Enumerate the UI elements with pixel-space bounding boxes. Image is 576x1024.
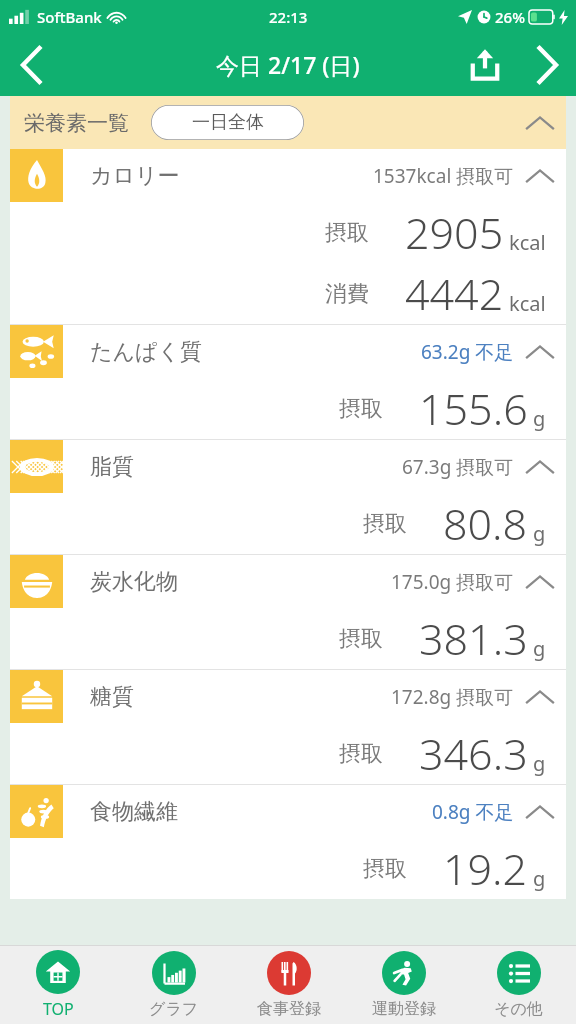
staticText: その他 — [494, 999, 543, 1019]
staticText: たんぱく質 — [90, 338, 203, 366]
staticText: 26% — [495, 7, 525, 27]
button[interactable]: Collapse カロリー — [514, 149, 566, 202]
button[interactable]: 脂質 — [10, 440, 566, 493]
staticText: TOP — [43, 998, 74, 1020]
staticText: 381.3 — [419, 609, 528, 668]
button[interactable]: グラフ — [116, 946, 231, 1024]
button[interactable]: 炭水化物 — [10, 555, 566, 608]
staticText: 63.2g 不足 — [421, 339, 514, 365]
button[interactable]: Collapse 脂質 — [514, 440, 566, 493]
staticText: kcal — [509, 290, 546, 317]
button[interactable]: Share — [452, 34, 518, 96]
button[interactable]: 食事登録 — [231, 946, 346, 1024]
button[interactable]: Collapse 食物繊維 — [514, 785, 566, 838]
staticText: 消費 — [325, 280, 369, 308]
button[interactable]: 栄養素一覧 — [10, 96, 566, 149]
button[interactable]: Collapse 炭水化物 — [514, 555, 566, 608]
button[interactable]: たんぱく質 — [10, 325, 566, 378]
button[interactable]: Previous day — [0, 34, 62, 96]
staticText: 1537kcal 摂取可 — [373, 163, 514, 189]
staticText: 脂質 — [90, 453, 134, 481]
staticText: グラフ — [149, 999, 199, 1019]
button[interactable]: その他 — [461, 946, 576, 1024]
staticText: 摂取 — [339, 740, 383, 768]
staticText: g — [533, 405, 546, 432]
staticText: g — [533, 520, 546, 547]
staticText: 運動登録 — [372, 999, 436, 1019]
staticText: 炭水化物 — [90, 568, 178, 596]
staticText: 175.0g 摂取可 — [391, 569, 514, 595]
staticText: 80.8 — [443, 494, 528, 553]
staticText: SoftBank — [37, 7, 102, 27]
staticText: 155.6 — [419, 379, 528, 438]
staticText: 今日 2/17 (日) — [216, 49, 360, 80]
button[interactable]: Next day — [518, 34, 576, 96]
staticText: 172.8g 摂取可 — [391, 684, 514, 710]
staticText: 摂取 — [339, 625, 383, 653]
staticText: kcal — [509, 229, 546, 256]
button[interactable]: カロリー — [10, 149, 566, 202]
staticText: カロリー — [90, 162, 180, 190]
button[interactable]: Collapse たんぱく質 — [514, 325, 566, 378]
staticText: 摂取 — [325, 219, 369, 247]
button[interactable]: 運動登録 — [346, 946, 461, 1024]
staticText: 346.3 — [419, 724, 528, 783]
staticText: 一日全体 — [192, 111, 264, 134]
staticText: 食事登録 — [257, 999, 321, 1019]
staticText: g — [533, 865, 546, 892]
button[interactable]: 一日全体 — [151, 105, 304, 140]
staticText: 67.3g 摂取可 — [402, 454, 514, 480]
button[interactable]: Collapse 糖質 — [514, 670, 566, 723]
staticText: 摂取 — [363, 855, 407, 883]
button[interactable]: Collapse section — [514, 96, 566, 149]
staticText: 糖質 — [90, 683, 134, 711]
staticText: 0.8g 不足 — [432, 799, 514, 825]
staticText: 栄養素一覧 — [24, 110, 129, 136]
staticText: 食物繊維 — [90, 798, 178, 826]
button[interactable]: TOP — [0, 946, 116, 1024]
staticText: g — [533, 750, 546, 777]
staticText: 22:13 — [269, 7, 308, 27]
staticText: g — [533, 635, 546, 662]
staticText: 摂取 — [339, 395, 383, 423]
button[interactable]: 糖質 — [10, 670, 566, 723]
staticText: 摂取 — [363, 510, 407, 538]
staticText: 4442 — [405, 264, 504, 323]
staticText: 2905 — [405, 203, 504, 262]
staticText: 19.2 — [443, 839, 528, 898]
button[interactable]: 食物繊維 — [10, 785, 566, 838]
